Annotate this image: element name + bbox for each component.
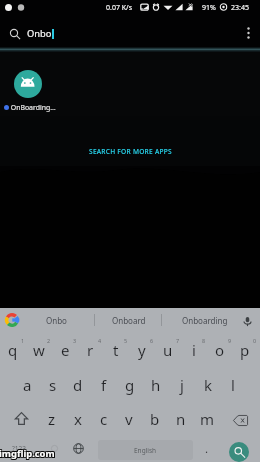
staticText: Onboarding xyxy=(182,315,228,326)
staticText: 6 xyxy=(150,337,154,344)
staticText: a xyxy=(23,375,32,395)
staticText: 0.07 K/s xyxy=(106,3,132,13)
staticText: y xyxy=(138,340,146,360)
staticText: q xyxy=(8,340,18,360)
button[interactable]: Shift xyxy=(8,401,34,435)
staticText: English xyxy=(134,446,157,455)
staticText: z xyxy=(48,409,56,429)
button[interactable]: English xyxy=(98,440,193,460)
staticText: 5 xyxy=(124,337,128,344)
staticText: ?123 xyxy=(12,444,26,453)
staticText: l xyxy=(231,375,235,395)
button[interactable]: x xyxy=(65,401,91,435)
staticText: s xyxy=(49,375,57,395)
button[interactable]: More options xyxy=(236,19,260,47)
staticText: k xyxy=(204,375,213,395)
button[interactable]: SEARCH FOR MORE APPS xyxy=(0,145,260,157)
button[interactable]: i xyxy=(181,332,207,366)
button[interactable]: Onboard xyxy=(100,308,158,332)
button[interactable]: u xyxy=(155,332,181,366)
button[interactable]: h xyxy=(143,366,169,401)
staticText: w xyxy=(33,340,45,360)
button[interactable]: m xyxy=(194,401,220,435)
staticText: j xyxy=(180,375,184,395)
staticText: m xyxy=(200,409,215,429)
button[interactable]: Voice input xyxy=(242,316,253,327)
button[interactable]: j xyxy=(169,366,195,401)
staticText: OnBoarding… xyxy=(9,103,56,112)
staticText: t xyxy=(113,340,119,360)
button[interactable]: Onboarding xyxy=(168,308,242,332)
staticText: imgflip.com xyxy=(0,446,54,459)
button[interactable]: Google xyxy=(5,313,19,327)
button[interactable]: c xyxy=(91,401,117,435)
staticText: c xyxy=(100,409,108,429)
staticText: b xyxy=(150,409,160,429)
button[interactable]: Onbo xyxy=(31,308,81,332)
button[interactable]: q xyxy=(0,332,26,366)
staticText: Onbo xyxy=(46,315,67,326)
staticText: h xyxy=(151,375,161,395)
staticText: SEARCH FOR MORE APPS xyxy=(89,147,172,156)
staticText: g xyxy=(125,375,135,395)
button[interactable]: k xyxy=(195,366,221,401)
staticText: 0 xyxy=(253,337,257,344)
staticText: n xyxy=(176,409,186,429)
button[interactable]: g xyxy=(117,366,143,401)
button[interactable]: . xyxy=(197,435,217,462)
button[interactable]: f xyxy=(91,366,117,401)
staticText: f xyxy=(101,375,107,395)
staticText: x xyxy=(74,409,82,429)
button[interactable]: e xyxy=(52,332,78,366)
button[interactable]: ?123 xyxy=(4,435,34,462)
staticText: e xyxy=(61,340,70,360)
button[interactable]: Backspace xyxy=(227,403,253,437)
button[interactable]: v xyxy=(116,401,142,435)
staticText: imgflip.com xyxy=(0,448,56,461)
staticText: o xyxy=(215,340,225,360)
staticText: r xyxy=(87,340,94,360)
staticText: d xyxy=(73,375,83,395)
button[interactable]: r xyxy=(77,332,103,366)
staticText: imgflip.com xyxy=(0,446,55,459)
staticText: i xyxy=(192,340,196,360)
button[interactable]: Change keyboard language xyxy=(68,435,88,462)
staticText: 2 xyxy=(47,337,51,344)
staticText: imgflip.com xyxy=(0,447,54,460)
staticText: u xyxy=(163,340,173,360)
button[interactable]: o xyxy=(207,332,233,366)
staticText: 8 xyxy=(202,337,206,344)
staticText: 4 xyxy=(98,337,102,344)
button[interactable]: a xyxy=(14,366,40,401)
button[interactable]: z xyxy=(39,401,65,435)
staticText: imgflip.com xyxy=(0,446,56,459)
staticText: 7 xyxy=(176,337,180,344)
staticText: Onboard xyxy=(112,315,146,326)
button[interactable]: l xyxy=(220,366,246,401)
button[interactable]: t xyxy=(103,332,129,366)
staticText: 1 xyxy=(21,337,25,344)
staticText: v xyxy=(125,409,133,429)
button[interactable]: Search xyxy=(229,442,249,462)
button[interactable]: b xyxy=(142,401,168,435)
staticText: 91% xyxy=(202,3,216,13)
button[interactable]: d xyxy=(65,366,91,401)
staticText: . xyxy=(205,441,209,457)
staticText: Onbo xyxy=(27,27,52,40)
button[interactable]: s xyxy=(40,366,66,401)
button[interactable]: OnBoarding… xyxy=(0,66,58,114)
staticText: imgflip.com xyxy=(0,447,56,460)
staticText: imgflip.com xyxy=(0,447,55,460)
button[interactable]: n xyxy=(168,401,194,435)
staticText: 23:45 xyxy=(231,3,249,13)
button[interactable]: Emoji xyxy=(44,435,64,462)
staticText: 3 xyxy=(73,337,77,344)
staticText: 9 xyxy=(228,337,232,344)
staticText: imgflip.com xyxy=(0,448,54,461)
staticText: p xyxy=(240,340,250,360)
button[interactable]: y xyxy=(129,332,155,366)
button[interactable]: w xyxy=(26,332,52,366)
staticText: imgflip.com xyxy=(0,448,55,461)
button[interactable]: p xyxy=(232,332,258,366)
